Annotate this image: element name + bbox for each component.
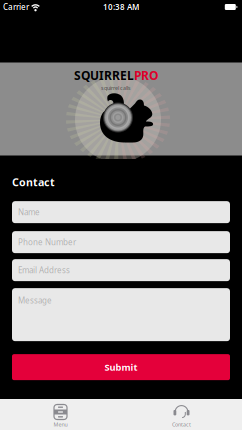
button[interactable]: Submit [12, 354, 230, 380]
staticText: Submit [104, 361, 137, 373]
button[interactable]: Menu [0, 399, 121, 430]
staticText: Menu [53, 421, 67, 428]
staticText: Message [18, 295, 52, 306]
staticText: Carrier [3, 2, 29, 12]
staticText: PRO [134, 67, 158, 83]
button[interactable]: Contact [121, 399, 242, 430]
staticText: squirrel calls [101, 84, 131, 91]
staticText: SQUIRREL [74, 67, 134, 83]
staticText: Name [18, 207, 40, 217]
staticText: Contact [172, 421, 191, 428]
staticText: Phone Number [18, 237, 76, 247]
staticText: Contact [12, 175, 55, 189]
staticText: 10:38 AM [103, 2, 139, 12]
staticText: Email Address [18, 265, 70, 275]
